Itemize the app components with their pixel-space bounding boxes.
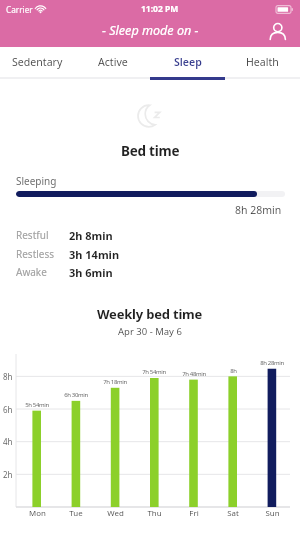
staticText: Fri xyxy=(189,508,199,519)
staticText: 7h 54min xyxy=(142,368,166,376)
staticText: Thu xyxy=(147,508,162,519)
staticText: 2h xyxy=(3,469,13,480)
button[interactable]: Sedentary xyxy=(0,47,75,80)
staticText: 2h 8min xyxy=(69,228,113,242)
staticText: Active xyxy=(98,55,128,69)
staticText: 8h 28min xyxy=(260,359,284,367)
staticText: Wed xyxy=(107,508,124,519)
staticText: Restful xyxy=(16,228,49,242)
staticText: 8h xyxy=(230,367,237,375)
button[interactable]: Sleep xyxy=(150,47,225,80)
staticText: Carrier xyxy=(6,4,33,15)
staticText: 8h 28min xyxy=(235,203,282,217)
staticText: 6h 30min xyxy=(64,391,88,399)
staticText: Sat xyxy=(227,508,239,519)
staticText: Weekly bed time xyxy=(97,305,203,323)
staticText: Bed time xyxy=(121,142,180,160)
staticText: 6h xyxy=(3,404,13,415)
staticText: 5h 54min xyxy=(25,401,49,409)
staticText: 11:02 PM xyxy=(141,3,179,15)
staticText: Health xyxy=(246,55,279,69)
staticText: 3h 14min xyxy=(69,247,120,261)
staticText: Mon xyxy=(29,508,46,519)
staticText: Tue xyxy=(69,508,83,519)
staticText: Sleep xyxy=(174,55,202,69)
staticText: Restless xyxy=(16,247,55,261)
staticText: Sleeping xyxy=(16,174,57,188)
staticText: 7h 18min xyxy=(103,378,127,386)
staticText: 3h 6min xyxy=(69,265,113,279)
staticText: 7h 48min xyxy=(182,370,206,378)
staticText: Awake xyxy=(16,265,47,279)
staticText: Apr 30 - May 6 xyxy=(118,325,182,338)
button[interactable]: Health xyxy=(225,47,300,80)
button[interactable]: Active xyxy=(75,47,150,80)
staticText: - Sleep mode on - xyxy=(102,22,199,39)
button[interactable]: Profile xyxy=(266,18,290,42)
staticText: Sedentary xyxy=(12,55,63,69)
staticText: Sun xyxy=(265,508,280,519)
staticText: 8h xyxy=(3,371,13,382)
staticText: 4h xyxy=(3,436,13,447)
